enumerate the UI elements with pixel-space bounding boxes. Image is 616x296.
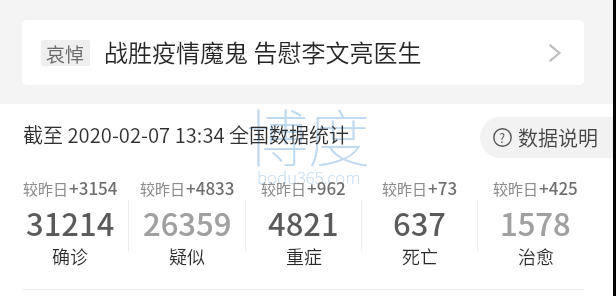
button[interactable]: 较昨日 xyxy=(362,175,477,271)
staticText: 数据说明 xyxy=(518,123,598,152)
staticText: 4821 xyxy=(268,200,339,245)
staticText: 较昨日 xyxy=(261,178,307,200)
staticText: 博度 xyxy=(246,90,371,180)
staticText: +4833 xyxy=(186,175,235,200)
button[interactable]: 较昨日 xyxy=(246,175,361,271)
staticText: +73 xyxy=(428,175,458,200)
staticText: 26359 xyxy=(143,200,232,245)
staticText: 较昨日 xyxy=(140,178,186,200)
staticText: +3154 xyxy=(69,175,118,200)
staticText: 31214 xyxy=(26,200,115,245)
staticText: 较昨日 xyxy=(23,178,69,200)
staticText: bodu365.com xyxy=(257,164,361,189)
staticText: 哀悼 xyxy=(46,40,85,66)
button[interactable]: ? xyxy=(480,117,616,158)
staticText: +962 xyxy=(307,175,346,200)
staticText: 治愈 xyxy=(518,243,554,269)
staticText: 较昨日 xyxy=(493,178,539,200)
button[interactable]: 哀悼 xyxy=(22,20,584,85)
staticText: 疑似 xyxy=(169,243,205,269)
staticText: ? xyxy=(499,128,506,147)
button[interactable]: 较昨日 xyxy=(129,175,245,271)
staticText: 637 xyxy=(393,200,447,245)
staticText: +425 xyxy=(539,175,578,200)
staticText: 截至 2020-02-07 13:34 全国数据统计 xyxy=(23,120,350,149)
staticText: 重症 xyxy=(286,243,322,269)
button[interactable]: 较昨日 xyxy=(478,175,593,271)
button[interactable]: 查看详情 xyxy=(546,42,568,64)
staticText: 1578 xyxy=(500,200,571,245)
staticText: 战胜疫情魔鬼 告慰李文亮医生 xyxy=(104,34,422,69)
staticText: 确诊 xyxy=(52,243,88,269)
staticText: 死亡 xyxy=(402,243,438,269)
button[interactable]: 较昨日 xyxy=(12,175,128,271)
staticText: 较昨日 xyxy=(382,178,428,200)
